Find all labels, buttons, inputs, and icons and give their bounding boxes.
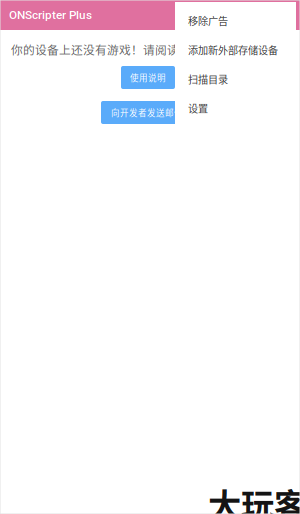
button[interactable]: 移除广告 (175, 6, 296, 35)
button[interactable]: 使用说明 (121, 66, 175, 89)
staticText: 扫描目录 (188, 72, 228, 86)
button[interactable]: 添加新外部存储设备 (175, 35, 296, 64)
staticText: 使用说明 (130, 71, 166, 84)
staticText: 大玩客 (208, 479, 300, 514)
button[interactable]: 设置 (175, 94, 296, 123)
staticText: 你的设备上还没有游戏！请阅读使用说明 (11, 41, 227, 58)
staticText: 移除广告 (188, 13, 228, 28)
staticText: 设置 (188, 101, 208, 116)
staticText: ONScripter Plus (9, 8, 92, 22)
staticText: 添加新外部存储设备 (188, 42, 278, 57)
button[interactable]: 向开发者发送邮件 (101, 101, 193, 124)
staticText: 向开发者发送邮件 (111, 106, 183, 119)
button[interactable]: 扫描目录 (175, 64, 296, 94)
